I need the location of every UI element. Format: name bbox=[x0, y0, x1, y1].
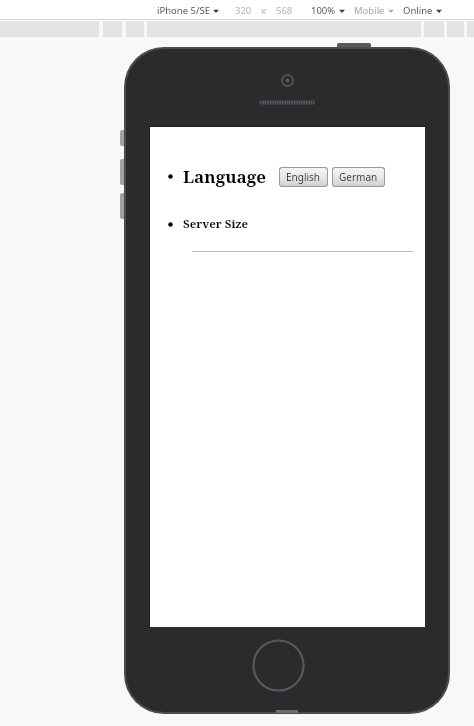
staticText: Mobile bbox=[354, 4, 385, 17]
staticText: iPhone 5/SE bbox=[157, 4, 210, 17]
button[interactable]: iPhone 5/SE bbox=[157, 4, 219, 17]
staticText: English bbox=[286, 170, 321, 184]
staticText: Online bbox=[403, 4, 433, 17]
button[interactable]: German bbox=[333, 168, 384, 186]
staticText: 320 bbox=[235, 4, 252, 17]
button[interactable]: English bbox=[280, 168, 327, 186]
staticText: 100% bbox=[311, 4, 336, 17]
button[interactable]: 100% bbox=[311, 4, 345, 17]
staticText: Language bbox=[183, 165, 266, 188]
other: Home bbox=[252, 639, 305, 692]
staticText: German bbox=[339, 170, 378, 184]
button[interactable]: Mobile bbox=[354, 4, 394, 17]
staticText: x bbox=[261, 4, 267, 17]
staticText: 568 bbox=[276, 4, 293, 17]
staticText: Server Size bbox=[183, 216, 249, 232]
button[interactable]: Online bbox=[403, 4, 442, 17]
other: Front camera bbox=[281, 74, 294, 87]
